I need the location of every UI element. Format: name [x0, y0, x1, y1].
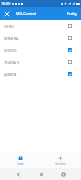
staticText: Liste	[17, 162, 24, 166]
staticText: VOROS	[4, 48, 17, 53]
button[interactable]: OHIO	[0, 20, 81, 32]
button[interactable]: JABRIN	[0, 68, 81, 80]
button[interactable]: Recents	[59, 170, 67, 178]
button[interactable]: Senden	[40, 152, 81, 168]
staticText: Fertig	[67, 11, 77, 16]
staticText: MINERA	[4, 36, 19, 41]
button[interactable]: Home	[37, 170, 45, 178]
staticText: 18:00	[1, 1, 11, 6]
button[interactable]: MINERA	[0, 32, 81, 44]
staticText: TIGMA V	[4, 60, 20, 65]
button[interactable]: VOROS	[0, 44, 81, 56]
staticText: Senden	[55, 162, 66, 166]
button[interactable]: Back	[14, 170, 22, 178]
staticText: JABRIN	[4, 72, 17, 77]
staticText: OHIO	[4, 24, 15, 29]
staticText: MG-Control	[16, 11, 37, 16]
button[interactable]: Fertig	[63, 7, 81, 20]
button[interactable]: TIGMA V	[0, 56, 81, 68]
button[interactable]: Close	[3, 10, 11, 18]
button[interactable]: Liste	[0, 152, 40, 168]
